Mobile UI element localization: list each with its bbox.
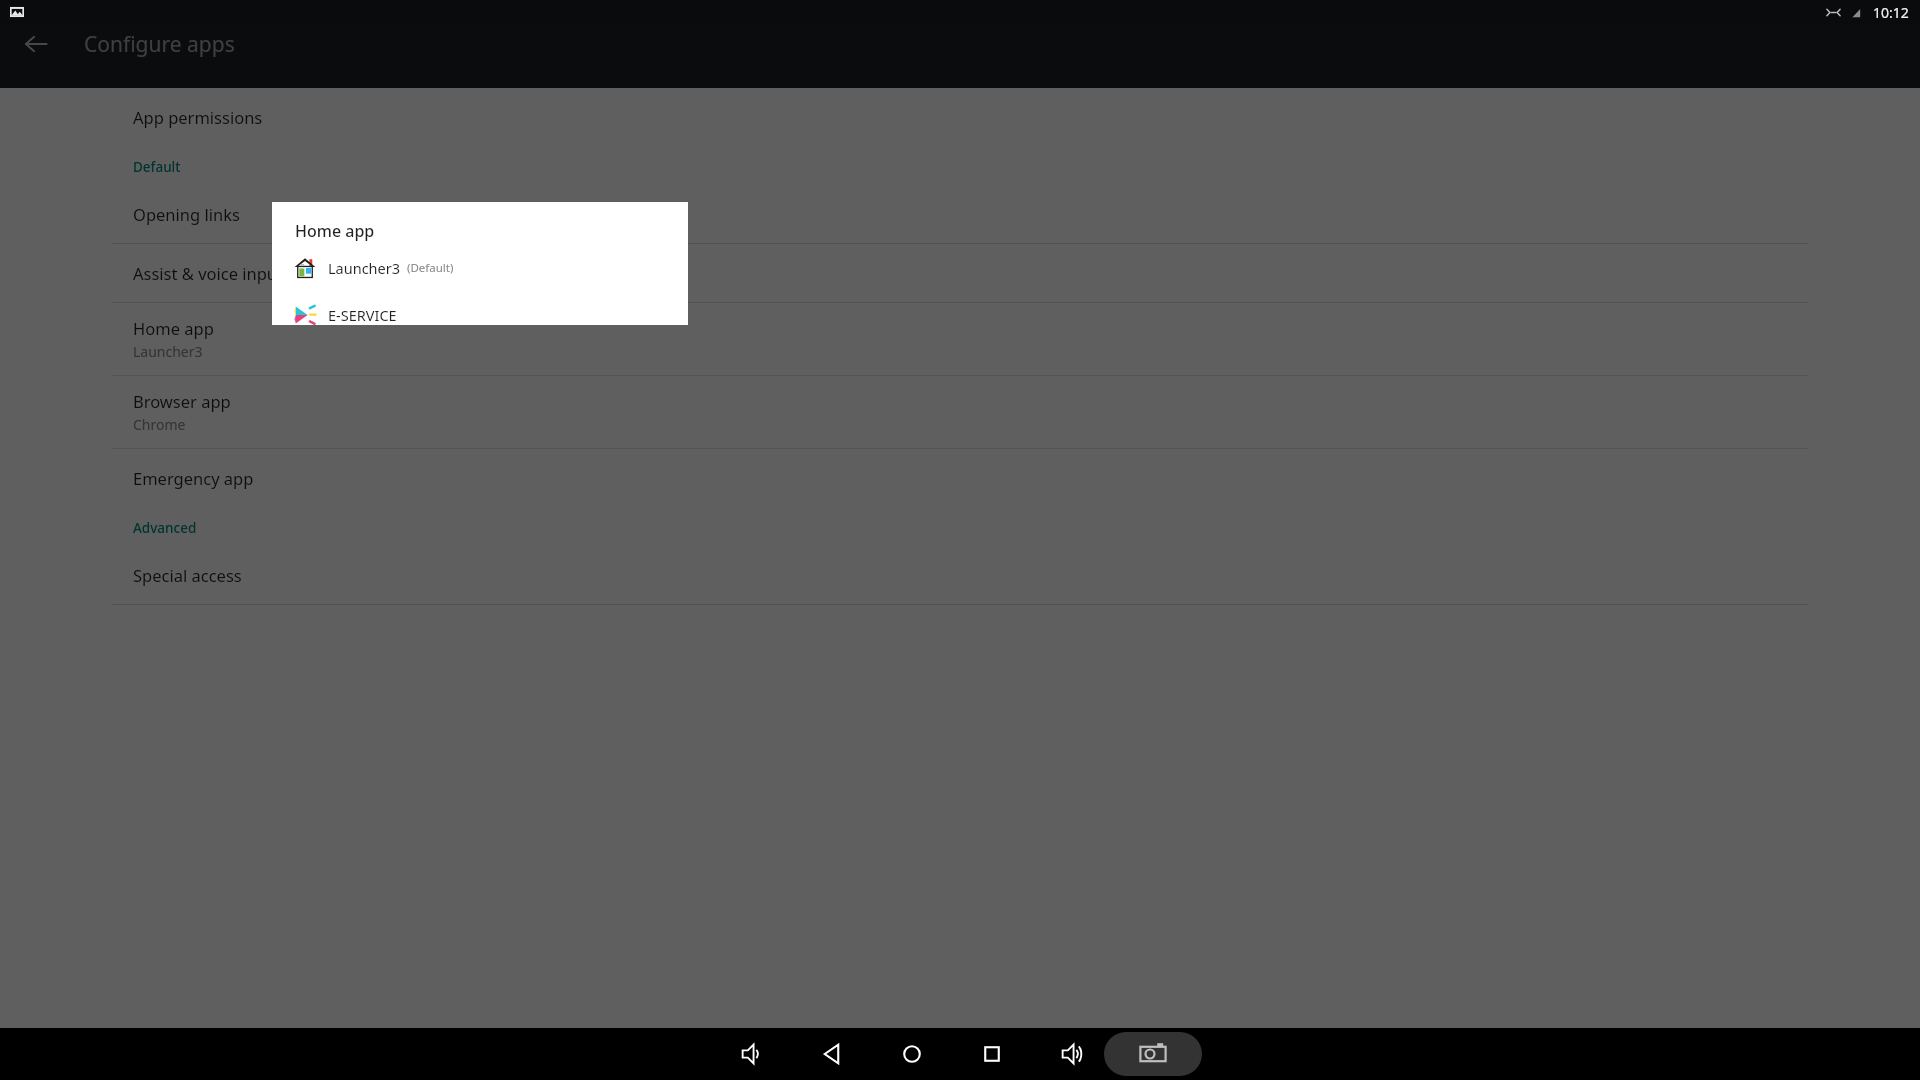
staticText: Opening links: [133, 203, 240, 225]
staticText: (Default): [407, 260, 454, 276]
staticText: Home app: [295, 220, 375, 242]
button[interactable]: Emergency app: [0, 449, 1920, 507]
button[interactable]: Volume up: [1046, 1028, 1098, 1080]
button[interactable]: E-SERVICE: [272, 305, 688, 325]
staticText: Configure apps: [84, 30, 235, 59]
button[interactable]: Home: [886, 1028, 938, 1080]
staticText: Assist & voice input: [133, 262, 284, 284]
staticText: E-SERVICE: [328, 305, 397, 325]
staticText: 10:12: [1873, 3, 1909, 22]
button[interactable]: Opening links: [0, 185, 1920, 243]
button[interactable]: Browser app: [0, 376, 1920, 448]
button[interactable]: Back: [806, 1028, 858, 1080]
staticText: Launcher3: [328, 258, 401, 278]
staticText: Chrome: [133, 415, 186, 434]
button[interactable]: Screenshot: [1104, 1032, 1202, 1076]
button[interactable]: Launcher3: [272, 253, 688, 283]
button[interactable]: Home app: [0, 303, 1920, 375]
staticText: Special access: [133, 564, 242, 586]
button[interactable]: App permissions: [0, 88, 1920, 146]
button[interactable]: Volume down: [726, 1028, 778, 1080]
staticText: App permissions: [133, 106, 263, 128]
staticText: Default: [133, 158, 181, 176]
button[interactable]: Back: [12, 20, 60, 68]
button[interactable]: Special access: [0, 546, 1920, 604]
staticText: Browser app: [133, 390, 231, 412]
staticText: Launcher3: [133, 342, 203, 361]
staticText: Advanced: [133, 519, 197, 537]
staticText: Home app: [133, 317, 214, 339]
button[interactable]: Recents: [966, 1028, 1018, 1080]
button[interactable]: Assist & voice input: [0, 244, 1920, 302]
staticText: Emergency app: [133, 467, 254, 489]
